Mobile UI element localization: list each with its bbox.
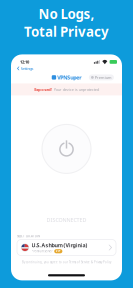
staticText: DISCONNECTED — [46, 216, 86, 223]
staticText: VPNSuper — [57, 74, 81, 81]
staticText: Premium — [95, 75, 112, 80]
staticText: No Logs, — [38, 5, 94, 23]
staticText: Exposed! — [34, 87, 52, 92]
staticText: U.S. Ashburn (Virginia) — [32, 242, 88, 249]
staticText: Your device is unprotected — [54, 87, 99, 92]
button[interactable]: Premium — [89, 74, 114, 80]
button[interactable]: U.S. Ashburn (Virginia) — [17, 239, 116, 255]
staticText: Settings — [21, 66, 34, 71]
staticText: Premium server — [32, 249, 53, 253]
button[interactable]: Settings — [11, 65, 122, 71]
staticText: SELECT LOCATION — [17, 234, 40, 238]
staticText: 12:10 — [20, 59, 29, 65]
staticText: VIP — [56, 249, 61, 253]
staticText: Total Privacy — [24, 23, 109, 40]
staticText: By continuing, you agree to our Terms of… — [22, 260, 111, 264]
button[interactable]: Connect — [42, 124, 91, 173]
